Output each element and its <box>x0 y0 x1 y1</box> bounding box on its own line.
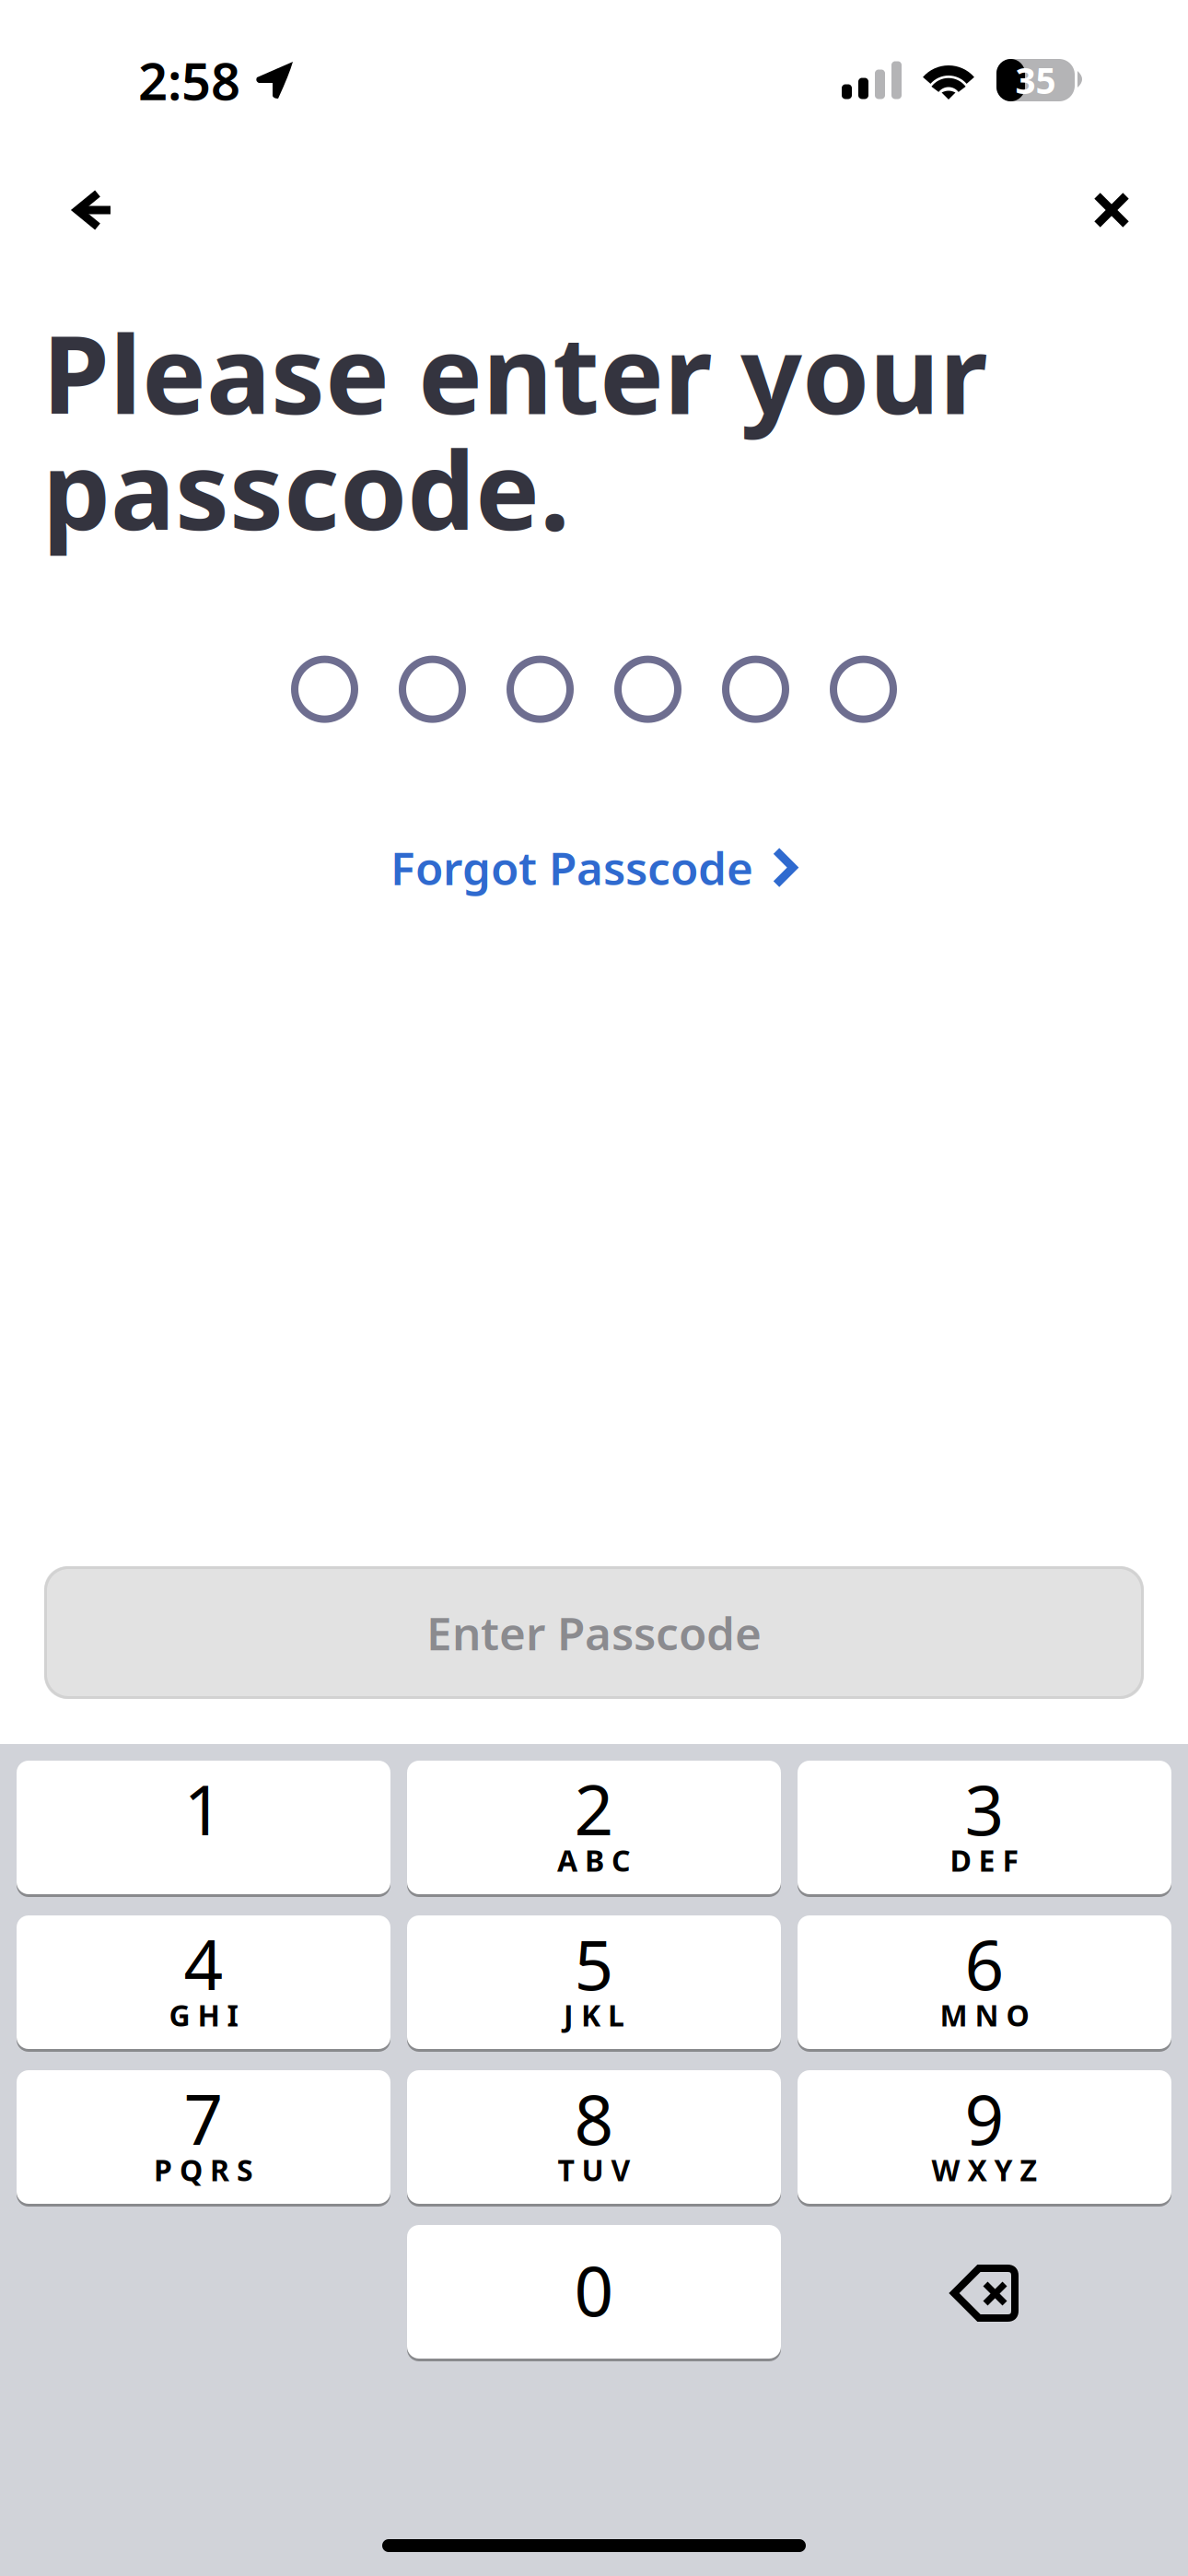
staticText: 0 <box>574 2244 614 2335</box>
staticText: D E F <box>950 1841 1019 1880</box>
staticText: 9 <box>965 2072 1004 2164</box>
button[interactable]: Back <box>43 159 145 261</box>
staticText: W X Y Z <box>932 2150 1037 2189</box>
staticText: M N O <box>940 1995 1029 2035</box>
staticText: A B C <box>557 1841 631 1880</box>
button[interactable]: 9 <box>798 2070 1171 2207</box>
button[interactable]: Close <box>1061 159 1162 261</box>
staticText: 7 <box>184 2072 223 2164</box>
button[interactable]: 6 <box>798 1915 1171 2052</box>
staticText: 1 <box>184 1763 223 1854</box>
button[interactable]: 8 <box>407 2070 781 2207</box>
button[interactable]: 4 <box>17 1915 390 2052</box>
staticText: 6 <box>965 1918 1004 2009</box>
staticText: 4 <box>184 1918 223 2009</box>
button[interactable]: 0 <box>407 2225 781 2361</box>
button[interactable]: 3 <box>798 1761 1171 1897</box>
button[interactable]: 2 <box>407 1761 781 1897</box>
staticText: J K L <box>564 1995 624 2035</box>
staticText: Forgot Passcode <box>390 837 753 898</box>
button[interactable]: 5 <box>407 1915 781 2052</box>
staticText: T U V <box>558 2150 630 2189</box>
button[interactable]: Forgot Passcode <box>390 839 798 896</box>
button[interactable]: 1 <box>17 1761 390 1897</box>
staticText: 8 <box>574 2072 614 2164</box>
staticText: 2 <box>574 1763 614 1854</box>
staticText: 35 <box>1015 56 1056 104</box>
button[interactable]: Delete <box>798 2225 1171 2361</box>
button[interactable]: Enter Passcode <box>44 1566 1144 1699</box>
button[interactable]: 7 <box>17 2070 390 2207</box>
staticText: 2:58 <box>138 46 240 114</box>
staticText: 3 <box>965 1763 1004 1854</box>
staticText: G H I <box>169 1995 238 2035</box>
staticText: Please enter your passcode. <box>42 300 987 560</box>
staticText: Enter Passcode <box>426 1602 762 1663</box>
staticText: 5 <box>574 1918 614 2009</box>
staticText: P Q R S <box>154 2150 253 2189</box>
